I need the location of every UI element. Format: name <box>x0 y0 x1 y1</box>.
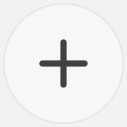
button[interactable]: Add <box>3 3 124 124</box>
